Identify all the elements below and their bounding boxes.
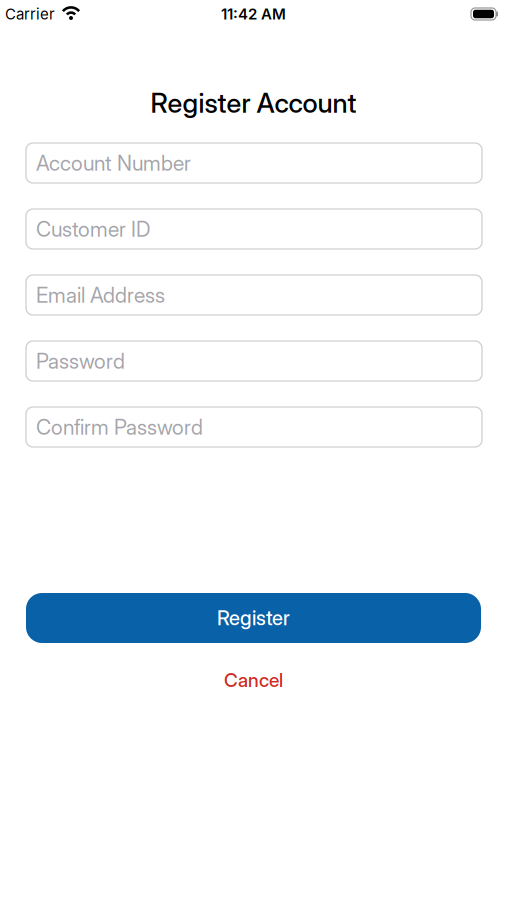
staticText: Account Number	[36, 150, 191, 176]
staticText: Register	[217, 606, 290, 630]
textField[interactable]: Confirm Password	[36, 414, 482, 440]
textField[interactable]: Account Number	[36, 150, 482, 176]
textField[interactable]: Customer ID	[36, 216, 482, 242]
staticText: Email Address	[36, 282, 165, 308]
staticText: Email Address	[36, 282, 165, 308]
staticText: Password	[36, 348, 125, 374]
staticText: Confirm Password	[36, 414, 203, 440]
staticText: Confirm Password	[36, 414, 203, 440]
staticText: Customer ID	[36, 216, 150, 242]
staticText: Carrier	[5, 5, 55, 23]
button[interactable]: Cancel	[224, 665, 283, 695]
button[interactable]: Register	[26, 593, 481, 643]
staticText: Customer ID	[36, 216, 150, 242]
staticText: 11:42 AM	[221, 5, 286, 23]
textField[interactable]: Password	[36, 348, 482, 374]
staticText: Cancel	[224, 668, 283, 691]
textField[interactable]: Email Address	[36, 282, 482, 308]
staticText: Register Account	[150, 87, 356, 119]
staticText: Account Number	[36, 150, 191, 176]
staticText: Password	[36, 348, 125, 374]
